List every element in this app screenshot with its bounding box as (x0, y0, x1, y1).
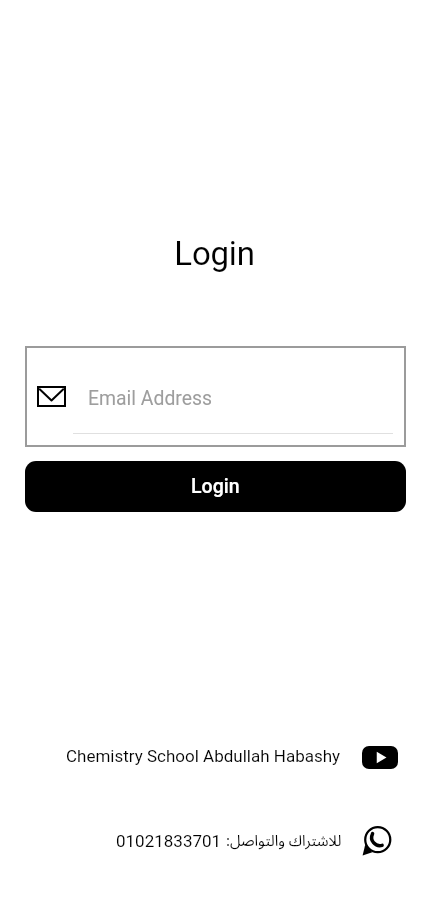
button[interactable]: WhatsApp (362, 826, 392, 856)
staticText: Login (191, 475, 240, 498)
staticText: Chemistry School Abdullah Habashy (66, 746, 341, 766)
staticText: Email Address (88, 387, 213, 410)
button[interactable]: Login (25, 461, 406, 512)
staticText: :للاشتراك والتواصل (226, 825, 342, 857)
staticText: Login (0, 234, 429, 273)
button[interactable]: Chemistry School Abdullah Habashy (66, 744, 398, 767)
button[interactable]: Email Address (25, 346, 406, 447)
button[interactable]: YouTube channel (362, 746, 398, 769)
button[interactable]: 01021833701 (116, 825, 392, 857)
staticText: 01021833701 (116, 831, 222, 851)
